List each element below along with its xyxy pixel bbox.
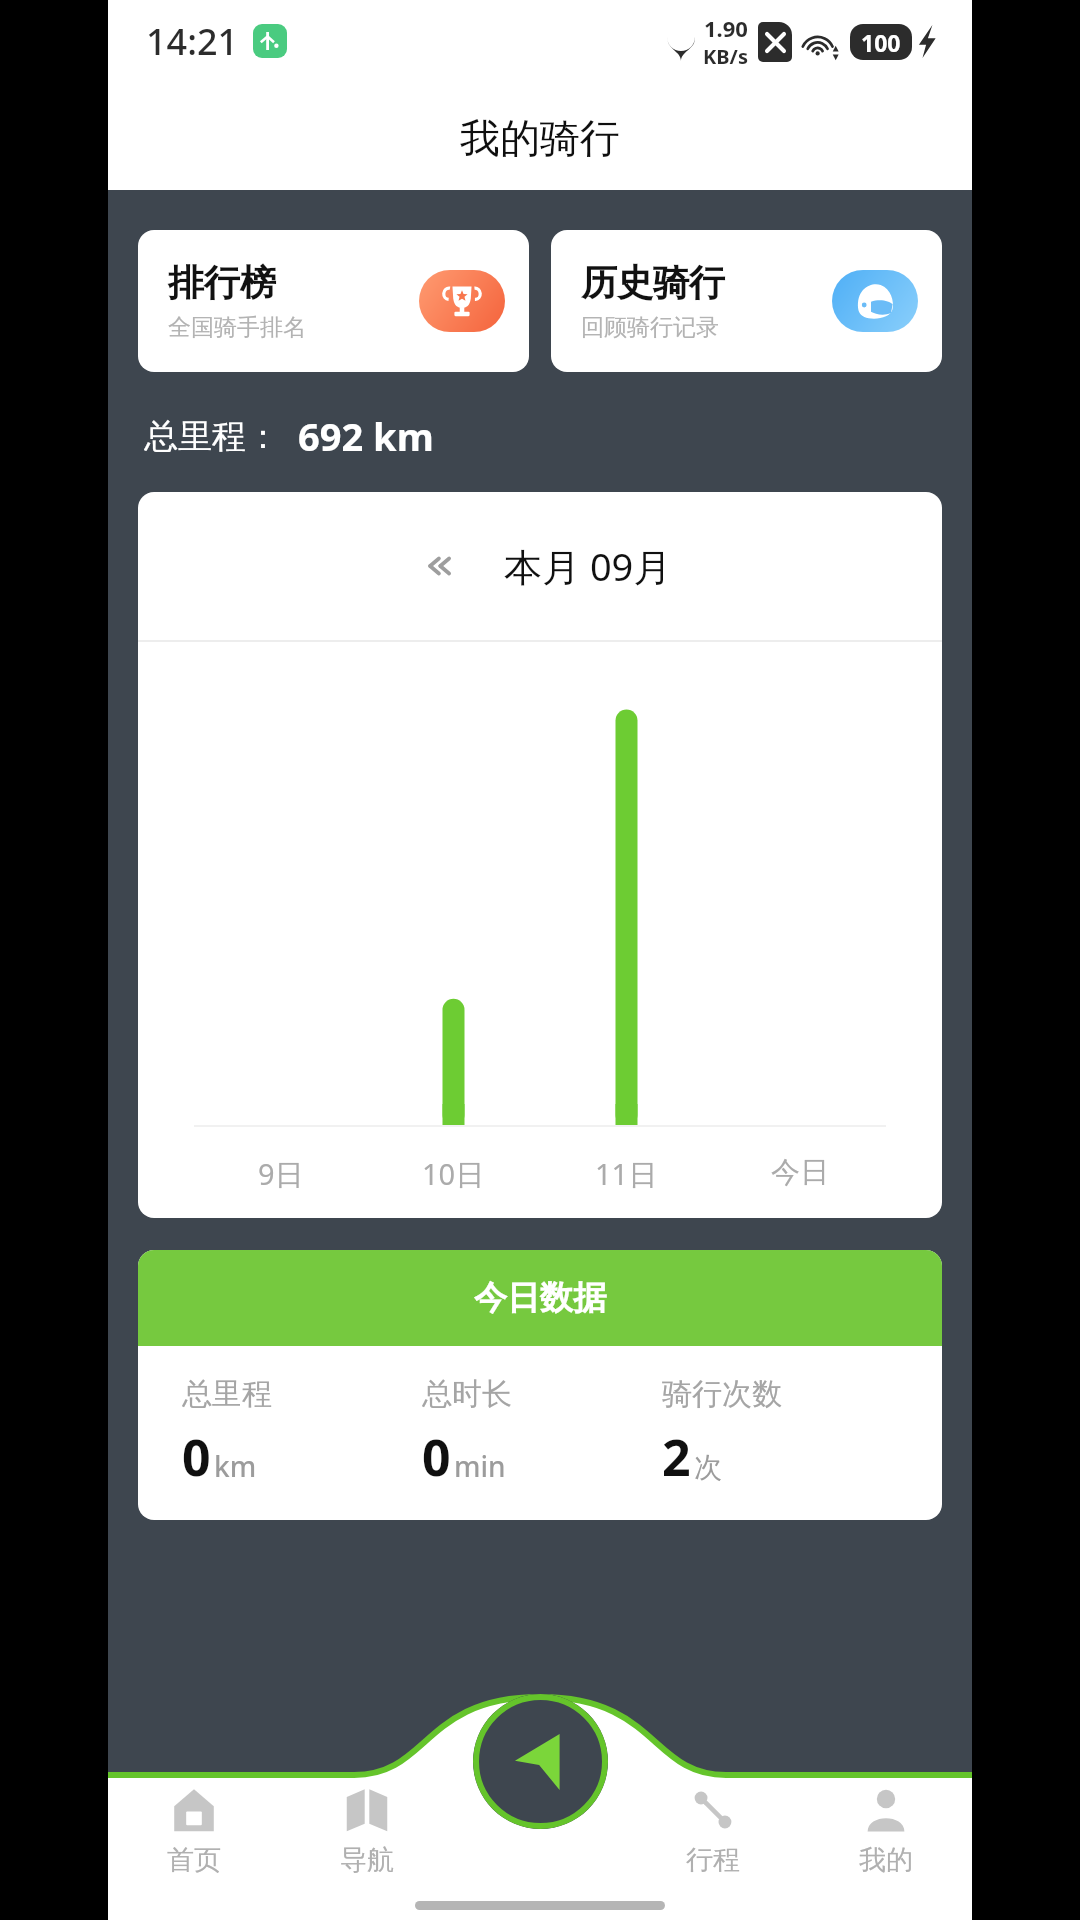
staticText: 今日 (771, 1154, 829, 1191)
staticText: 今日数据 (474, 1277, 606, 1319)
staticText: 2 (662, 1423, 691, 1491)
staticText: 总里程 (182, 1375, 272, 1413)
staticText: 全国骑手排名 (168, 313, 306, 342)
button[interactable]: 行程 (626, 1770, 799, 1894)
staticText: 10日 (422, 1154, 485, 1194)
staticText: 行程 (686, 1843, 740, 1877)
button[interactable]: 首页 (108, 1770, 280, 1894)
staticText: 1.90 (704, 13, 748, 43)
staticText: 骑行次数 (662, 1375, 782, 1413)
staticText: 首页 (167, 1843, 221, 1877)
other: Location (667, 23, 695, 61)
staticText: 导航 (340, 1843, 394, 1877)
staticText: KB/s (703, 43, 748, 70)
button[interactable]: 我的 (799, 1770, 972, 1894)
staticText: 历史骑行 (581, 260, 725, 305)
staticText: 总时长 (422, 1375, 512, 1413)
staticText: km (214, 1447, 257, 1485)
button[interactable]: 排行榜 (138, 230, 529, 372)
staticText: 9日 (258, 1154, 304, 1194)
staticText: 11日 (595, 1154, 658, 1194)
staticText: 总里程： (144, 415, 280, 458)
staticText: 0 (182, 1423, 211, 1491)
staticText: 14:21 (146, 17, 239, 66)
staticText: 我的骑行 (460, 113, 620, 163)
staticText: min (454, 1447, 506, 1485)
staticText: 100 (861, 27, 901, 58)
button[interactable]: 历史骑行 (551, 230, 942, 372)
staticText: 回顾骑行记录 (581, 313, 719, 342)
staticText: 次 (694, 1450, 722, 1485)
staticText: 692 km (298, 410, 434, 462)
staticText: 我的 (859, 1843, 913, 1877)
button[interactable]: Previous month (408, 531, 478, 601)
staticText: 排行榜 (168, 260, 276, 305)
staticText: 本月 09月 (504, 540, 672, 592)
button[interactable]: Start navigation (473, 1694, 608, 1829)
staticText: 0 (422, 1423, 451, 1491)
button[interactable]: 导航 (280, 1770, 453, 1894)
